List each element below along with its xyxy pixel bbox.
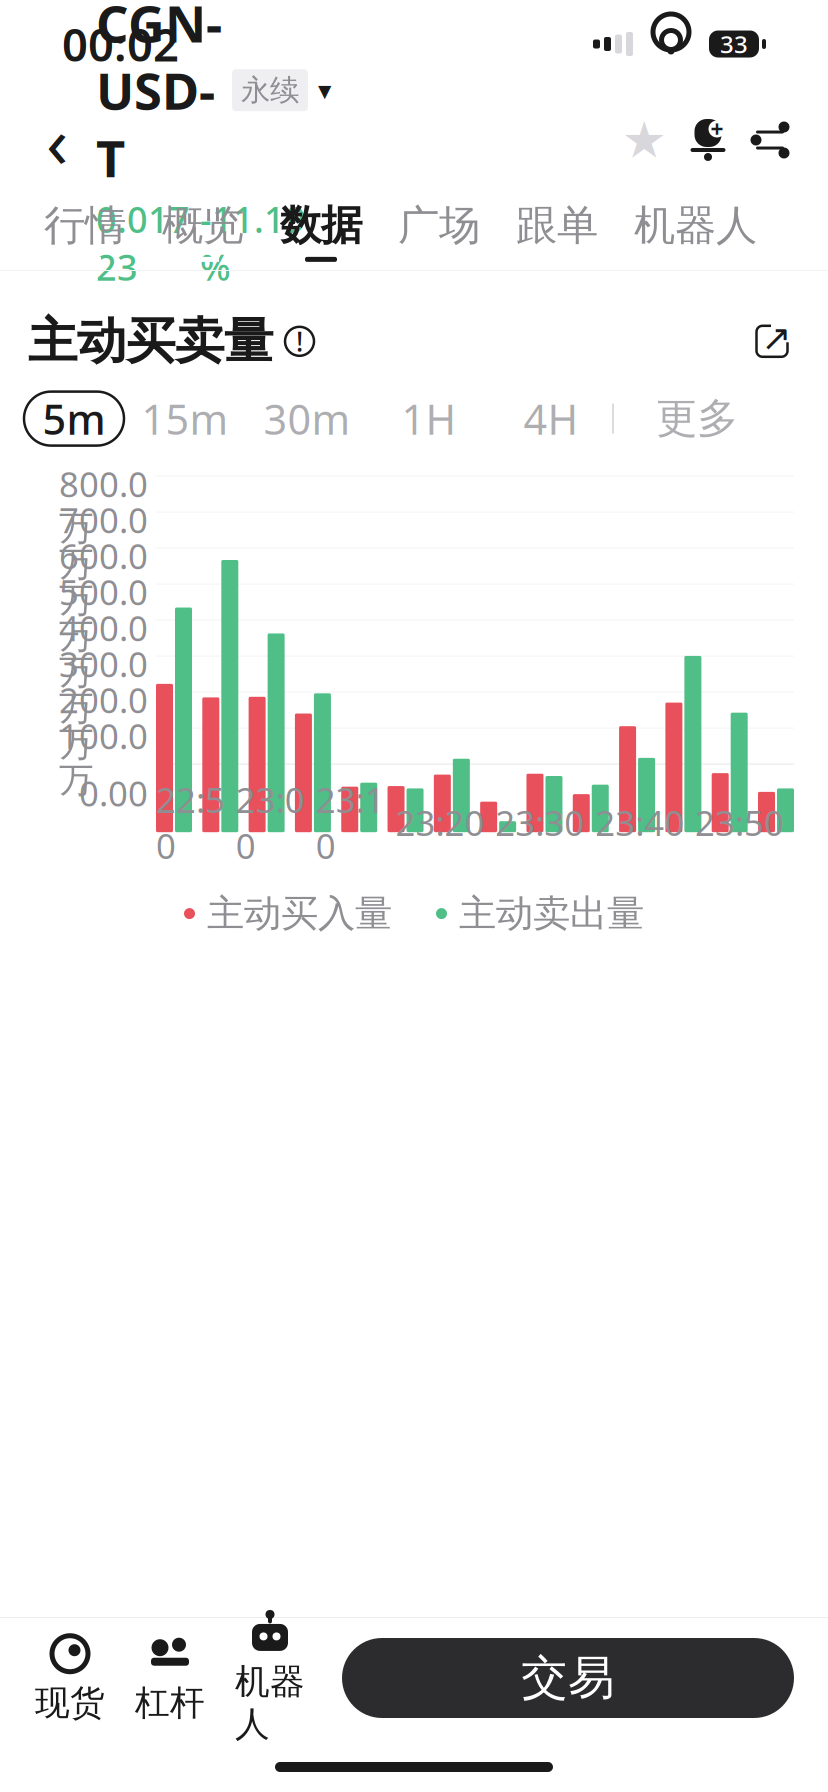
staticText: 23:10 [316,777,385,869]
staticText: 杠杆 [135,1682,205,1724]
staticText: 22:50 [156,777,225,869]
staticText: 5m [42,391,105,446]
button[interactable]: 更多 [614,392,738,446]
staticText: 机器人 [634,200,757,251]
staticText: 0.00 [79,770,148,816]
staticText: 33 [720,28,748,60]
staticText: 23:50 [695,800,784,846]
button[interactable]: 交易 [342,1638,794,1718]
staticText: 主动买卖量 [28,311,273,372]
staticText: 23:00 [236,777,305,869]
staticText: ↗ [761,317,791,358]
staticText: 主动买入量 [207,891,392,937]
staticText: 主动卖出量 [459,891,644,937]
button[interactable]: 4H [490,392,612,446]
button[interactable]: 30m [246,392,368,446]
staticText: 广场 [398,200,480,251]
staticText: 1H [401,391,456,446]
staticText: 永续 [241,72,299,108]
staticText: 4H [523,391,578,446]
button[interactable]: 5m [24,392,124,446]
staticText: ‹ [46,92,68,188]
button[interactable]: Back [28,105,86,175]
button[interactable]: Price alerts [676,107,740,173]
button[interactable]: 概览 [144,192,262,270]
button[interactable]: 数据 [262,192,380,270]
staticText: + [710,114,723,144]
staticText: 400.0万 [59,605,148,693]
staticText: 800.0万 [59,461,148,549]
button[interactable]: 机器人 [220,1626,320,1730]
staticText: 机器人 [235,1660,305,1746]
staticText: -11.19% [200,195,306,291]
button[interactable]: Share [740,107,800,173]
staticText: 600.0万 [59,533,148,621]
staticText: 200.0万 [59,677,148,765]
staticText: 23:20 [395,800,484,846]
staticText: 交易 [521,1649,615,1707]
staticText: 0.01723 [96,195,190,291]
button[interactable]: 15m [124,392,246,446]
button[interactable]: 广场 [380,192,498,270]
staticText: 23:40 [595,800,684,846]
button[interactable]: 机器人 [616,192,775,270]
staticText: 15m [141,391,228,446]
staticText: ★ [621,111,666,169]
button[interactable]: 跟单 [498,192,616,270]
staticText: 00:02 [62,14,179,74]
staticText: 100.0万 [59,713,148,801]
staticText: 现货 [35,1682,105,1724]
button[interactable]: 现货 [20,1626,120,1730]
staticText: 500.0万 [59,569,148,657]
button[interactable]: 杠杆 [120,1626,220,1730]
staticText: 跟单 [516,200,598,251]
staticText: 700.0万 [59,497,148,585]
staticText: 概览 [162,200,244,251]
button[interactable]: 行情 [26,192,144,270]
button[interactable]: 1H [368,392,490,446]
staticText: 30m [263,391,350,446]
staticText: CGNUSDT [96,0,222,191]
staticText: 行情 [44,200,126,251]
button[interactable]: Favorite [612,107,676,173]
staticText: 更多 [656,393,738,444]
staticText: ▾ [318,75,331,105]
staticText: 300.0万 [59,641,148,729]
button[interactable]: Open full chart [744,313,800,369]
staticText: 23:30 [495,800,584,846]
staticText: 数据 [280,200,362,251]
staticText: ! [296,324,303,359]
